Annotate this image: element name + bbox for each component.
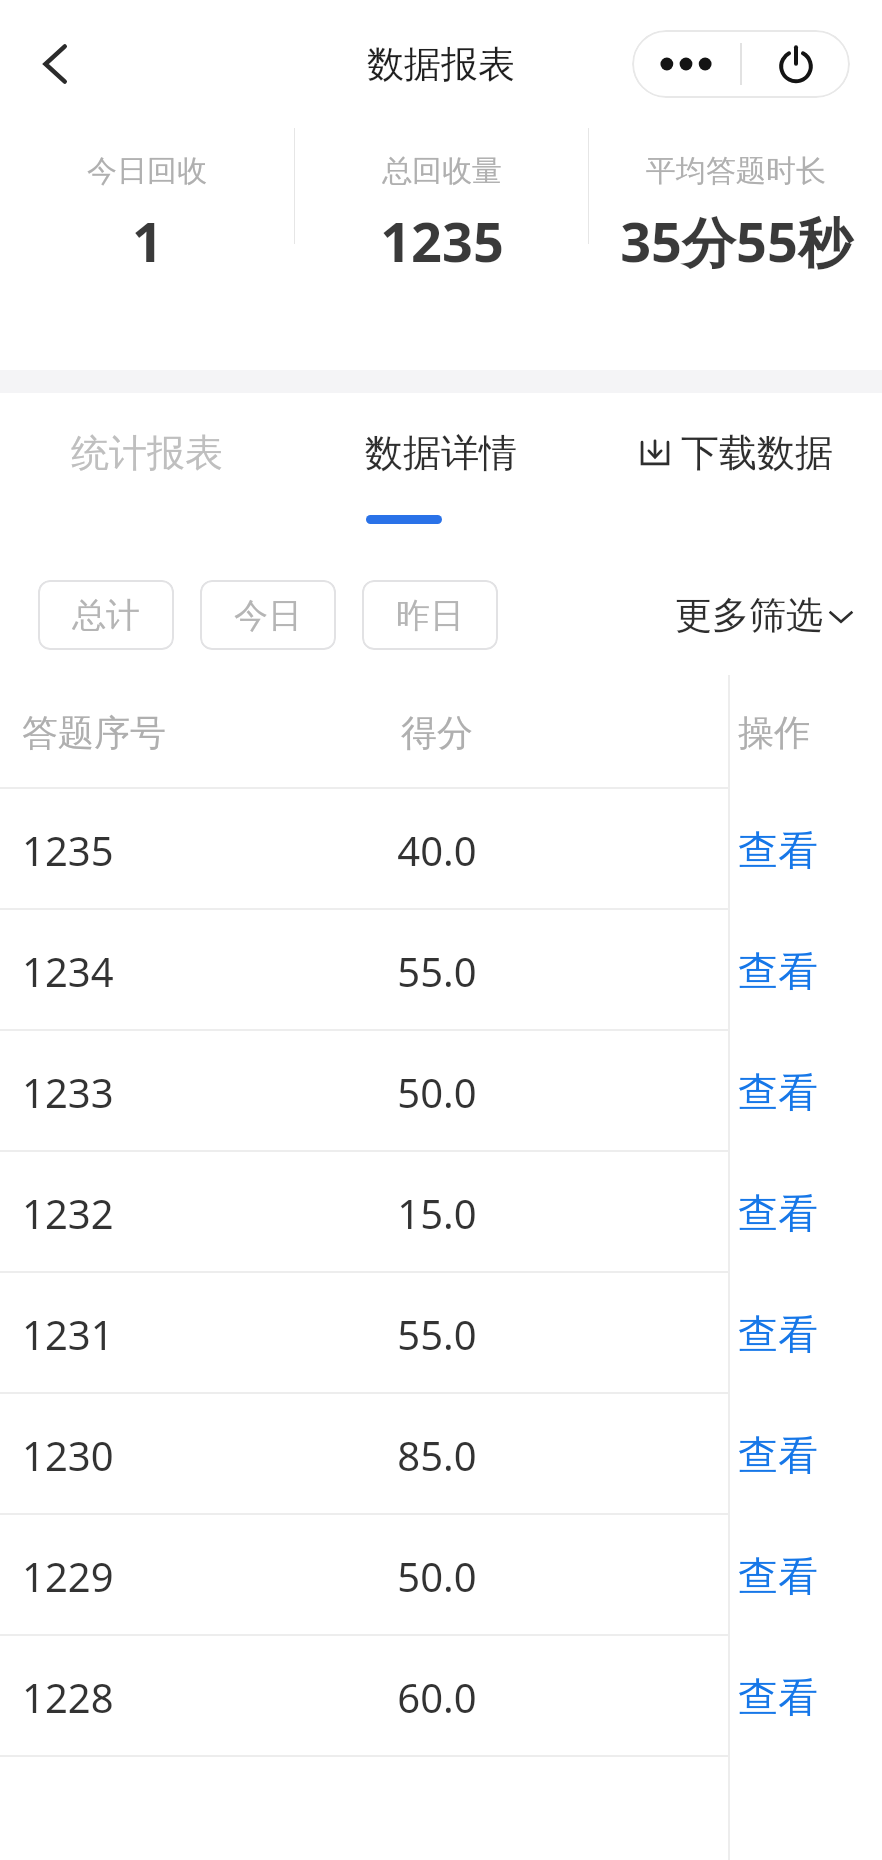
staticText: 操作 bbox=[738, 710, 882, 755]
staticText: 查看 bbox=[738, 1430, 818, 1480]
staticText: 1228 bbox=[22, 1670, 322, 1724]
button[interactable]: 总回收量 bbox=[295, 128, 588, 370]
button[interactable]: 1229 bbox=[0, 1515, 882, 1636]
button[interactable]: 1232 bbox=[0, 1152, 882, 1273]
button[interactable]: 今日 bbox=[200, 580, 336, 650]
button[interactable]: 查看 bbox=[728, 1273, 882, 1394]
staticText: 得分 bbox=[322, 710, 552, 755]
staticText: 总回收量 bbox=[382, 152, 502, 190]
button[interactable]: 昨日 bbox=[362, 580, 498, 650]
button[interactable]: 平均答题时长 bbox=[589, 128, 882, 370]
button[interactable]: 查看 bbox=[728, 1515, 882, 1636]
button[interactable]: 1230 bbox=[0, 1394, 882, 1515]
button[interactable]: 下载数据 bbox=[588, 393, 882, 513]
staticText: 查看 bbox=[738, 1188, 818, 1238]
staticText: 查看 bbox=[738, 1309, 818, 1359]
staticText: 昨日 bbox=[396, 594, 464, 637]
staticText: 50.0 bbox=[322, 1549, 552, 1603]
staticText: 35分55秒 bbox=[620, 204, 852, 278]
staticText: 1231 bbox=[22, 1307, 322, 1361]
button[interactable]: 更多筛选 bbox=[675, 592, 856, 639]
staticText: 数据详情 bbox=[365, 429, 517, 477]
button[interactable]: 查看 bbox=[728, 1152, 882, 1273]
staticText: 查看 bbox=[738, 1551, 818, 1601]
button[interactable]: 总计 bbox=[38, 580, 174, 650]
staticText: 今日 bbox=[234, 594, 302, 637]
staticText: 1 bbox=[132, 204, 163, 278]
staticText: 平均答题时长 bbox=[646, 152, 826, 190]
staticText: 查看 bbox=[738, 825, 818, 875]
staticText: 数据报表 bbox=[367, 41, 515, 88]
staticText: 1233 bbox=[22, 1065, 322, 1119]
staticText: 1232 bbox=[22, 1186, 322, 1240]
button[interactable]: 查看 bbox=[728, 789, 882, 910]
staticText: 1234 bbox=[22, 944, 322, 998]
staticText: 查看 bbox=[738, 1067, 818, 1117]
staticText: 1230 bbox=[22, 1428, 322, 1482]
staticText: 85.0 bbox=[322, 1428, 552, 1482]
staticText: 答题序号 bbox=[22, 710, 322, 755]
staticText: 15.0 bbox=[322, 1186, 552, 1240]
button[interactable]: 数据详情 bbox=[294, 393, 588, 513]
button[interactable]: 查看 bbox=[728, 1031, 882, 1152]
button[interactable]: 统计报表 bbox=[0, 393, 294, 513]
button[interactable]: 查看 bbox=[728, 1636, 882, 1757]
button[interactable]: 查看 bbox=[728, 910, 882, 1031]
button[interactable]: More bbox=[632, 30, 740, 98]
button[interactable]: Close bbox=[742, 30, 850, 98]
staticText: 1229 bbox=[22, 1549, 322, 1603]
button[interactable]: 1231 bbox=[0, 1273, 882, 1394]
staticText: 1235 bbox=[380, 204, 504, 278]
button[interactable]: 1233 bbox=[0, 1031, 882, 1152]
button[interactable]: 1234 bbox=[0, 910, 882, 1031]
button[interactable]: 今日回收 bbox=[0, 128, 294, 370]
button[interactable]: 1235 bbox=[0, 789, 882, 910]
staticText: 统计报表 bbox=[71, 429, 223, 477]
button[interactable]: Back bbox=[18, 26, 94, 102]
staticText: 40.0 bbox=[322, 823, 552, 877]
staticText: 1235 bbox=[22, 823, 322, 877]
staticText: 下载数据 bbox=[681, 429, 833, 477]
staticText: 查看 bbox=[738, 1672, 818, 1722]
button[interactable]: 1228 bbox=[0, 1636, 882, 1757]
staticText: 更多筛选 bbox=[675, 592, 823, 639]
button[interactable]: 查看 bbox=[728, 1394, 882, 1515]
staticText: 55.0 bbox=[322, 944, 552, 998]
staticText: 今日回收 bbox=[87, 152, 207, 190]
staticText: 查看 bbox=[738, 946, 818, 996]
staticText: 总计 bbox=[72, 594, 140, 637]
staticText: 50.0 bbox=[322, 1065, 552, 1119]
staticText: 60.0 bbox=[322, 1670, 552, 1724]
staticText: 55.0 bbox=[322, 1307, 552, 1361]
